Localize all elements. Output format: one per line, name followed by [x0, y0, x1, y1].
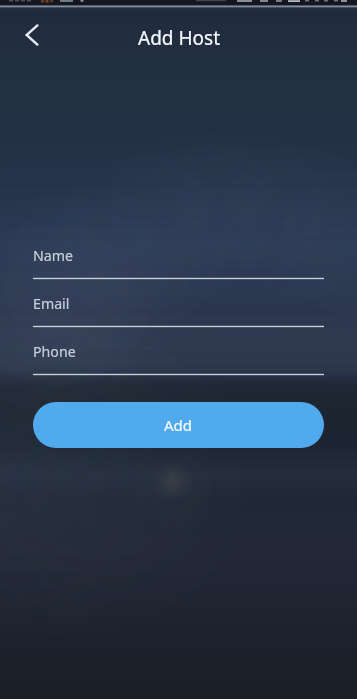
- staticText: Add Host: [138, 25, 220, 51]
- staticText: Email: [33, 294, 70, 313]
- button[interactable]: Back: [9, 12, 55, 58]
- button[interactable]: Add: [33, 402, 324, 448]
- staticText: Phone: [33, 342, 76, 361]
- staticText: Add: [164, 415, 193, 435]
- staticText: Name: [33, 246, 74, 265]
